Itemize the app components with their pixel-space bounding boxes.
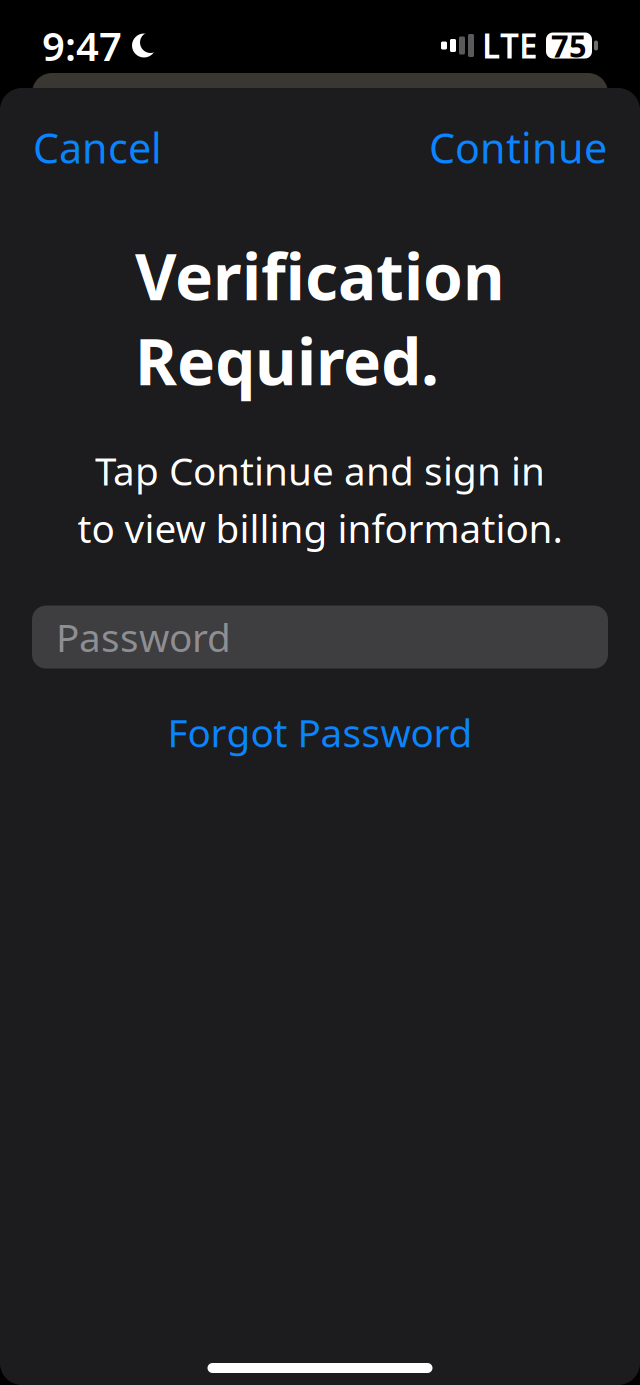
staticText: 75 [551, 25, 587, 66]
staticText: Password [56, 611, 231, 663]
staticText: Continue [429, 120, 607, 175]
button[interactable]: Cancel [27, 110, 168, 185]
staticText: Tap Continue and sign in [95, 445, 545, 496]
staticText: to view billing information. [77, 502, 562, 553]
staticText: Verification Required. [135, 233, 505, 403]
staticText: Cancel [33, 120, 162, 175]
button[interactable]: Continue [423, 110, 613, 185]
staticText: 9:47 [42, 19, 122, 72]
button[interactable]: Forgot Password [153, 697, 486, 768]
staticText: Forgot Password [167, 707, 472, 758]
staticText: LTE [482, 23, 538, 68]
button[interactable]: Password [32, 606, 608, 669]
